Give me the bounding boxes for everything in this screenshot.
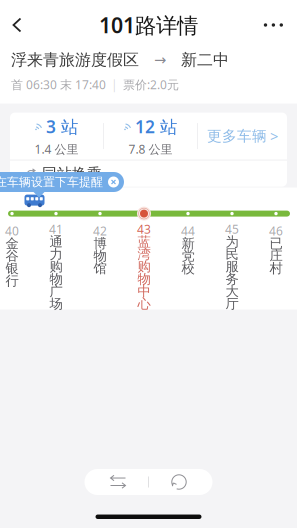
- staticText: 45: [225, 221, 239, 237]
- staticText: 已: [269, 235, 282, 252]
- staticText: 物: [137, 271, 150, 287]
- staticText: 力: [49, 246, 62, 262]
- staticText: 7.8 公里: [128, 141, 172, 157]
- staticText: 46: [269, 223, 283, 239]
- staticText: 厅: [225, 296, 238, 312]
- staticText: 蓝: [137, 234, 150, 250]
- staticText: 馆: [93, 260, 106, 276]
- staticText: 民: [225, 246, 238, 262]
- staticText: |: [111, 77, 118, 93]
- staticText: 为: [225, 234, 238, 250]
- staticText: 通: [49, 234, 62, 250]
- staticText: 中: [137, 283, 150, 300]
- staticText: 3 站: [46, 115, 78, 138]
- staticText: 40: [5, 223, 19, 239]
- staticText: 行: [5, 272, 18, 289]
- button[interactable]: Reverse direction: [88, 469, 148, 495]
- button[interactable]: 更多车辆: [198, 113, 287, 160]
- staticText: 银: [5, 260, 18, 276]
- staticText: 广: [49, 283, 62, 300]
- staticText: 43: [137, 221, 151, 237]
- staticText: 浮来青旅游度假区: [11, 50, 139, 70]
- staticText: 务: [225, 271, 238, 287]
- staticText: 大: [225, 283, 238, 300]
- staticText: 新二中: [181, 50, 229, 70]
- staticText: 新: [181, 235, 194, 252]
- staticText: 博: [93, 235, 106, 252]
- staticText: 村: [269, 260, 282, 276]
- staticText: 1.4 公里: [34, 141, 78, 157]
- staticText: 42: [93, 223, 107, 239]
- staticText: 同站换乘: [42, 165, 102, 183]
- staticText: 12 站: [135, 115, 177, 138]
- staticText: 庄: [269, 248, 282, 264]
- staticText: 场: [49, 296, 62, 312]
- staticText: 41: [49, 221, 63, 237]
- staticText: 物: [49, 271, 62, 287]
- button[interactable]: Back: [0, 3, 36, 46]
- staticText: 服: [225, 258, 238, 275]
- staticText: 票价:2.0元: [123, 77, 179, 93]
- staticText: 心: [137, 296, 150, 312]
- staticText: 更多车辆: [207, 127, 267, 145]
- staticText: 校: [181, 260, 194, 276]
- staticText: 谷: [5, 248, 18, 264]
- staticText: 党: [181, 248, 194, 264]
- button[interactable]: More: [250, 5, 297, 45]
- staticText: >: [270, 126, 278, 146]
- staticText: 首 06:30 末 17:40: [11, 77, 106, 93]
- staticText: →: [139, 51, 181, 68]
- staticText: 44: [181, 223, 195, 239]
- staticText: 物: [93, 248, 106, 264]
- button[interactable]: Close tip: [103, 172, 124, 192]
- staticText: 金: [5, 235, 18, 252]
- button[interactable]: 12 站: [104, 113, 197, 160]
- button[interactable]: 3 站: [10, 113, 103, 160]
- staticText: 购: [137, 258, 150, 275]
- button[interactable]: Refresh: [149, 469, 209, 495]
- button[interactable]: 同站换乘: [10, 161, 287, 187]
- staticText: 购: [49, 258, 62, 275]
- staticText: 可在车辆设置下车提醒: [0, 175, 103, 189]
- staticText: 湾: [137, 246, 150, 262]
- staticText: 101路详情: [99, 11, 198, 39]
